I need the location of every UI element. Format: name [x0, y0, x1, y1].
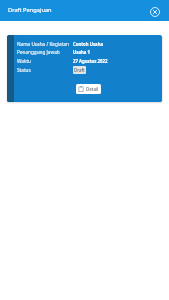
- staticText: Detail: [86, 86, 99, 92]
- staticText: Draft: [74, 67, 85, 73]
- button[interactable]: Close: [148, 5, 162, 19]
- button[interactable]: Detail: [76, 84, 101, 94]
- staticText: Penanggung Jawab: [17, 49, 73, 55]
- staticText: Nama Usaha / Kegiatan: [17, 41, 73, 47]
- staticText: Draft Pengajuan: [8, 6, 52, 14]
- staticText: Contoh Usaha: [73, 41, 104, 47]
- button[interactable]: Nama Usaha / Kegiatan: [7, 35, 162, 102]
- staticText: Usaha 1: [73, 49, 90, 55]
- staticText: Status: [17, 67, 73, 73]
- staticText: Waktu: [17, 58, 73, 64]
- staticText: 27 Agustus 2022: [73, 58, 108, 64]
